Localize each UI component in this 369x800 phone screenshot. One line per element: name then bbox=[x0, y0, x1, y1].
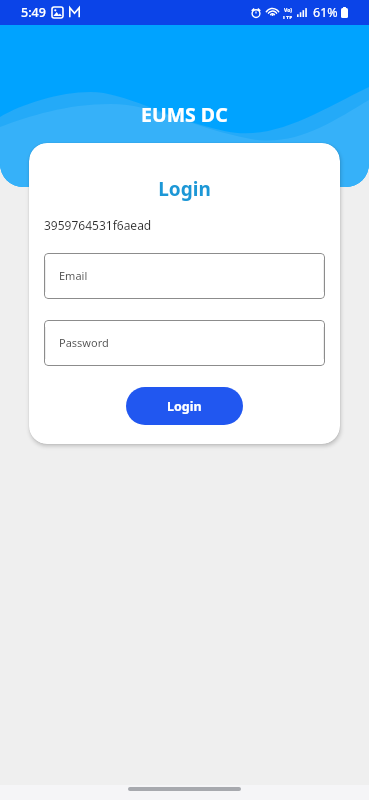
staticText: 61% bbox=[313, 4, 338, 21]
staticText: Vo) bbox=[284, 7, 292, 14]
button[interactable]: Login bbox=[126, 387, 243, 425]
staticText: LTE bbox=[283, 14, 293, 19]
staticText: Login bbox=[167, 398, 202, 415]
staticText: 5:49 bbox=[21, 4, 46, 21]
button[interactable]: Email bbox=[44, 253, 325, 299]
staticText: EUMS DC bbox=[141, 101, 228, 128]
staticText: 3959764531f6aead bbox=[44, 217, 152, 233]
staticText: Login bbox=[29, 176, 340, 202]
other: Home bbox=[128, 787, 241, 791]
button[interactable]: Password bbox=[44, 320, 325, 366]
staticText: Email bbox=[59, 268, 88, 283]
staticText: Password bbox=[59, 335, 109, 350]
